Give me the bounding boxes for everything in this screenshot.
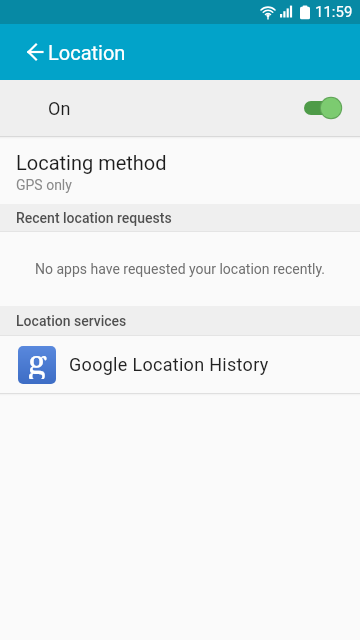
button[interactable]: g [0,336,360,393]
staticText: On [48,98,71,119]
button[interactable]: On [0,80,360,136]
button[interactable] [0,24,44,80]
staticText: GPS only [16,177,72,193]
staticText: No apps have requested your location rec… [35,261,326,277]
staticText: Google Location History [69,354,269,375]
staticText: Location services [16,313,127,329]
staticText: Locating method [16,151,167,174]
button[interactable]: Locating method [0,139,360,204]
staticText: Location [48,41,126,64]
staticText: g [28,341,47,379]
staticText: 11:59 [315,3,353,21]
staticText: Recent location requests [16,210,172,226]
